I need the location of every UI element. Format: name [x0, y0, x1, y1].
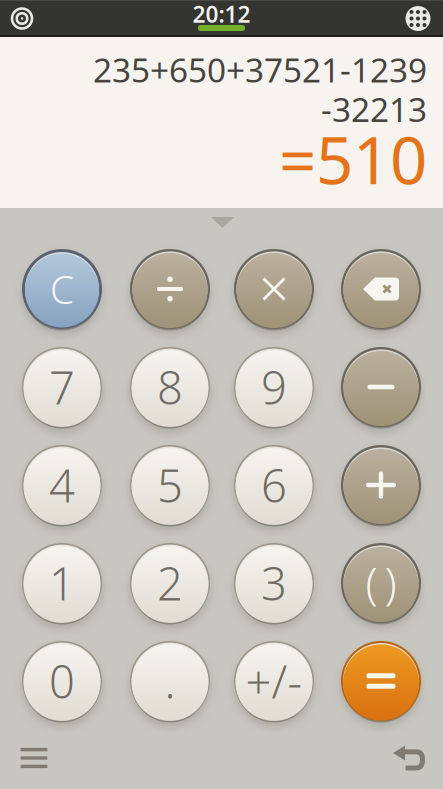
button[interactable]: Keypad layout — [396, 1, 440, 36]
button[interactable]: 1 — [22, 543, 102, 623]
button[interactable]: . — [130, 641, 210, 721]
staticText: 5 — [157, 455, 183, 515]
staticText: 0 — [49, 651, 75, 711]
button[interactable]: 7 — [22, 347, 102, 427]
button[interactable]: Parentheses — [341, 543, 421, 623]
button[interactable]: Divide — [130, 249, 210, 329]
staticText: . — [164, 651, 175, 711]
staticText: =510 — [279, 116, 427, 202]
button[interactable]: Minus — [341, 347, 421, 427]
button[interactable]: 2 — [130, 543, 210, 623]
button[interactable]: Clear — [22, 249, 102, 329]
button[interactable]: Undo — [385, 738, 433, 778]
staticText: 7 — [49, 357, 75, 417]
staticText: 20:12 — [192, 0, 250, 29]
button[interactable]: 8 — [130, 347, 210, 427]
staticText: 6 — [261, 455, 287, 515]
staticText: C — [50, 263, 74, 315]
button[interactable]: Collapse display — [203, 209, 242, 236]
staticText: 235+650+37521-1239 — [93, 47, 427, 92]
staticText: 9 — [261, 357, 287, 417]
button[interactable]: 6 — [234, 445, 314, 525]
staticText: -32213 — [321, 87, 427, 131]
button[interactable]: 0 — [22, 641, 102, 721]
button[interactable]: Plus — [341, 445, 421, 525]
button[interactable]: Precision — [0, 1, 44, 36]
button[interactable]: 3 — [234, 543, 314, 623]
button[interactable]: 9 — [234, 347, 314, 427]
staticText: 2 — [157, 553, 183, 613]
button[interactable]: Menu — [10, 738, 58, 778]
button[interactable]: Multiply — [234, 249, 314, 329]
staticText: 3 — [261, 553, 287, 613]
staticText: 8 — [157, 357, 183, 417]
button[interactable]: Backspace — [341, 249, 421, 329]
staticText: +/- — [245, 651, 302, 711]
staticText: 4 — [49, 455, 75, 515]
staticText: 1 — [49, 553, 75, 613]
button[interactable]: Equals — [341, 641, 421, 721]
staticText: ( ) — [365, 554, 396, 612]
button[interactable]: 5 — [130, 445, 210, 525]
button[interactable]: 4 — [22, 445, 102, 525]
button[interactable]: +/- — [234, 641, 314, 721]
